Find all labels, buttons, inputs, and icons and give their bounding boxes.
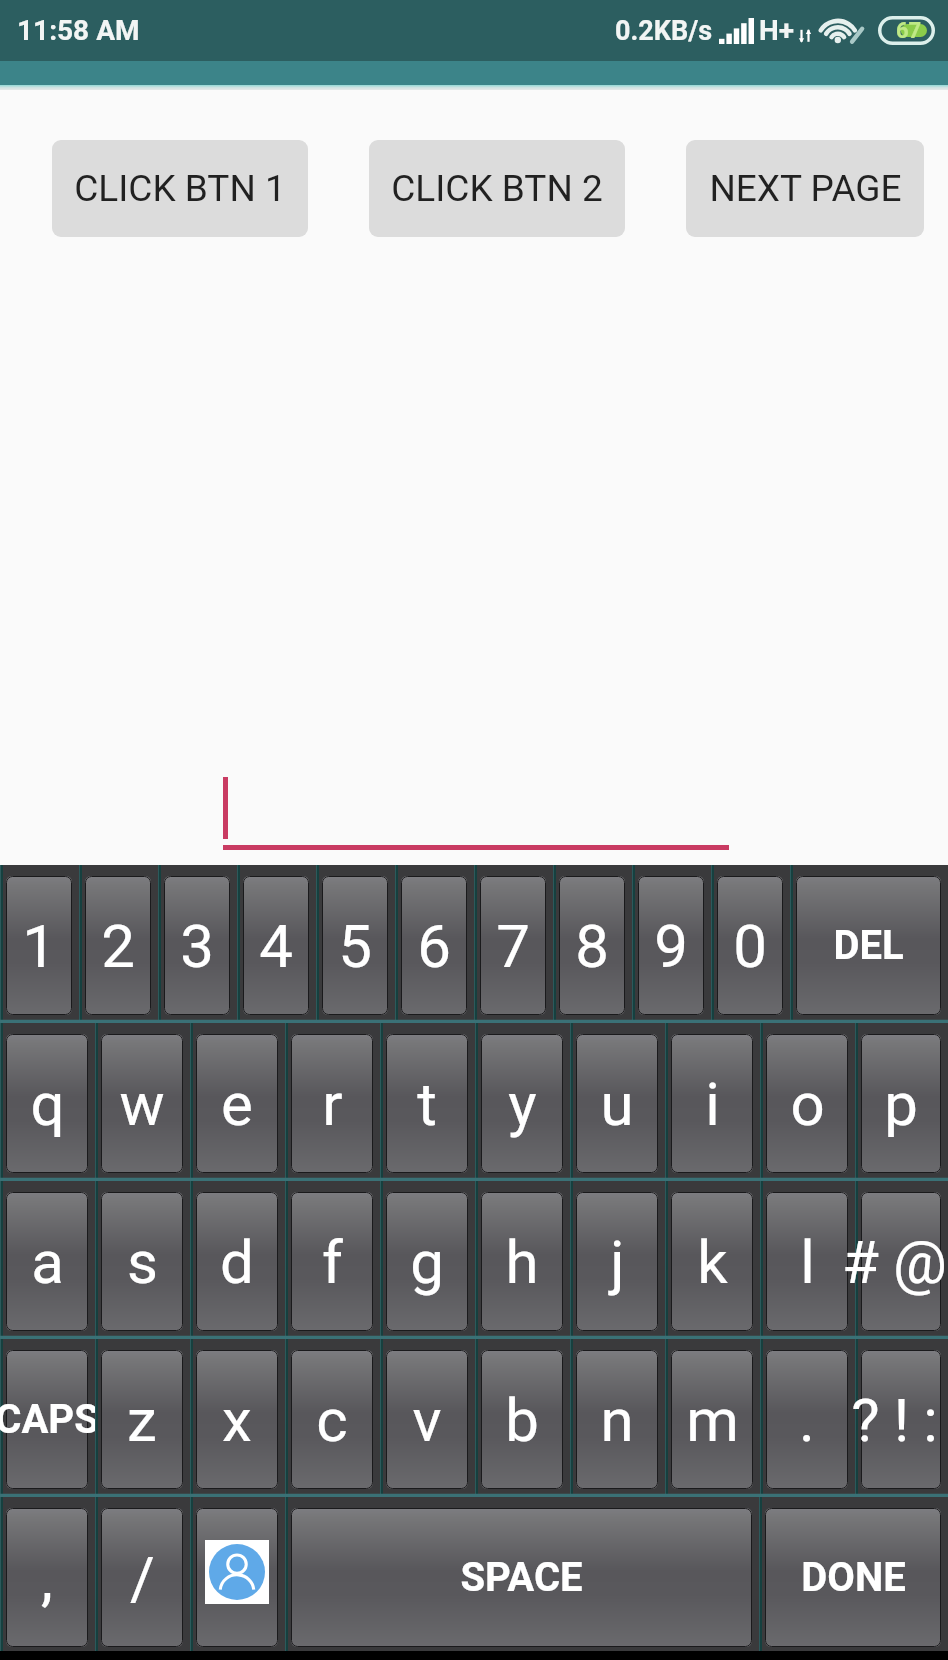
button[interactable]: SPACE [285, 1497, 759, 1651]
staticText: r [322, 1069, 343, 1139]
button[interactable]: x [190, 1339, 285, 1497]
staticText: NEXT PAGE [709, 167, 902, 210]
button[interactable]: d [190, 1181, 285, 1339]
staticText: 6 [417, 911, 451, 981]
button[interactable]: r [285, 1023, 380, 1181]
staticText: l [800, 1227, 815, 1297]
staticText: 2 [101, 911, 135, 981]
button[interactable]: j [570, 1181, 665, 1339]
button[interactable]: i [665, 1023, 760, 1181]
button[interactable]: h [475, 1181, 570, 1339]
button[interactable]: 4 [237, 865, 316, 1023]
staticText: CAPS [0, 1396, 99, 1443]
staticText: s [127, 1227, 158, 1297]
staticText: DEL [833, 922, 904, 969]
button[interactable]: Emoji keyboard [190, 1497, 285, 1651]
button[interactable]: u [570, 1023, 665, 1181]
staticText: / [130, 1543, 155, 1613]
staticText: 0.2KB/s [615, 15, 713, 47]
staticText: c [316, 1385, 348, 1455]
button[interactable]: y [475, 1023, 570, 1181]
button[interactable]: 2 [79, 865, 158, 1023]
staticText: CLICK BTN 1 [74, 167, 286, 210]
staticText: v [412, 1385, 442, 1455]
button[interactable]: b [475, 1339, 570, 1497]
button[interactable]: a [0, 1181, 95, 1339]
button[interactable]: q [0, 1023, 95, 1181]
button[interactable]: 6 [395, 865, 474, 1023]
button[interactable]: t [380, 1023, 475, 1181]
button[interactable]: CLICK BTN 2 [369, 140, 625, 237]
other: Emoji keyboard [205, 1540, 269, 1604]
staticText: u [600, 1069, 634, 1139]
button[interactable]: o [760, 1023, 855, 1181]
staticText: m [686, 1385, 739, 1455]
button[interactable]: 7 [474, 865, 553, 1023]
button[interactable]: CLICK BTN 1 [52, 140, 308, 237]
staticText: y [508, 1069, 537, 1139]
button[interactable]: z [95, 1339, 190, 1497]
staticText: 9 [654, 911, 688, 981]
staticText: i [705, 1069, 720, 1139]
staticText: w [119, 1069, 165, 1139]
staticText: a [31, 1227, 64, 1297]
button[interactable]: g [380, 1181, 475, 1339]
button[interactable]: / [95, 1497, 190, 1651]
staticText: H+ [759, 14, 795, 47]
staticText: k [697, 1227, 728, 1297]
staticText: f [322, 1227, 343, 1297]
staticText: 5 [338, 911, 372, 981]
button[interactable]: 5 [316, 865, 395, 1023]
staticText: . [799, 1385, 815, 1455]
staticText: o [790, 1069, 825, 1139]
button[interactable]: 1 [0, 865, 79, 1023]
staticText: p [884, 1069, 918, 1139]
button[interactable]: v [380, 1339, 475, 1497]
button[interactable]: n [570, 1339, 665, 1497]
button[interactable]: 3 [158, 865, 237, 1023]
button[interactable]: s [95, 1181, 190, 1339]
staticText: z [127, 1385, 157, 1455]
staticText: 3 [180, 911, 214, 981]
button[interactable]: #@ [855, 1181, 948, 1339]
staticText: e [221, 1069, 253, 1139]
button[interactable]: m [665, 1339, 760, 1497]
staticText: g [410, 1227, 444, 1297]
button[interactable]: w [95, 1023, 190, 1181]
button[interactable]: ?!: [855, 1339, 948, 1497]
staticText: 4 [259, 911, 293, 981]
staticText: 1 [22, 911, 56, 981]
button[interactable]: 8 [553, 865, 632, 1023]
button[interactable]: 9 [632, 865, 711, 1023]
button[interactable]: p [855, 1023, 948, 1181]
staticText: t [417, 1069, 437, 1139]
staticText: DONE [801, 1554, 906, 1601]
button[interactable]: DEL [790, 865, 948, 1023]
button[interactable]: 0 [711, 865, 790, 1023]
staticText: ?!: [851, 1385, 948, 1455]
button[interactable]: l [760, 1181, 855, 1339]
button[interactable]: k [665, 1181, 760, 1339]
staticText: CLICK BTN 2 [391, 167, 603, 210]
staticText: 67 [896, 18, 922, 44]
staticText: 7 [496, 911, 530, 981]
staticText: 0 [733, 911, 767, 981]
button[interactable]: , [0, 1497, 95, 1651]
button[interactable]: f [285, 1181, 380, 1339]
button[interactable]: CAPS [0, 1339, 95, 1497]
staticText: n [600, 1385, 634, 1455]
button[interactable]: . [760, 1339, 855, 1497]
button[interactable]: e [190, 1023, 285, 1181]
staticText: 11:58 AM [17, 14, 140, 47]
staticText: d [220, 1227, 254, 1297]
staticText: b [505, 1385, 539, 1455]
staticText: 8 [575, 911, 609, 981]
button[interactable]: DONE [759, 1497, 948, 1651]
staticText: , [41, 1543, 53, 1613]
staticText: j [610, 1227, 625, 1297]
button[interactable]: NEXT PAGE [686, 140, 924, 237]
staticText: SPACE [460, 1554, 583, 1601]
staticText: x [222, 1385, 252, 1455]
staticText: q [30, 1069, 65, 1139]
button[interactable]: c [285, 1339, 380, 1497]
